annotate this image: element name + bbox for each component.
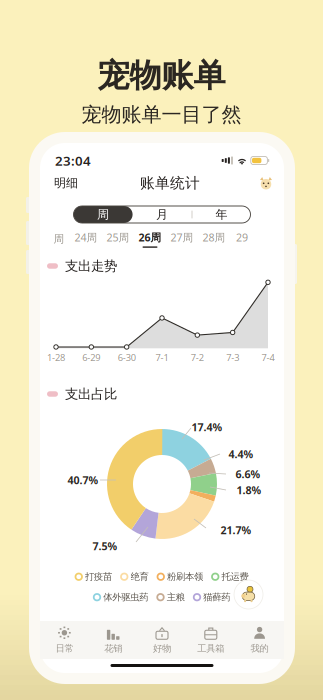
staticText: 4.4% [228, 447, 253, 461]
staticText: 26周 [138, 230, 161, 244]
staticText: 粉刷本领 [167, 571, 203, 582]
staticText: 猫藓药 [203, 591, 230, 603]
button[interactable]: 29 [230, 229, 254, 249]
staticText: 宠物账单 [97, 56, 225, 95]
staticText: 6.6% [235, 467, 260, 481]
staticText: 体外驱虫药 [103, 591, 148, 603]
staticText: 明细 [54, 176, 78, 190]
button[interactable]: 25周 [102, 229, 134, 249]
staticText: 7-3 [226, 351, 239, 364]
button[interactable]: 周 [74, 206, 133, 223]
staticText: 托运费 [221, 571, 248, 582]
button[interactable]: 24周 [70, 229, 102, 249]
staticText: 周 [53, 232, 64, 245]
staticText: 7-2 [191, 351, 204, 364]
staticText: 主粮 [167, 591, 185, 603]
staticText: 绝育 [130, 571, 148, 582]
staticText: 花销 [104, 643, 122, 654]
staticText: 6-29 [82, 351, 100, 364]
button[interactable]: 27周 [166, 229, 198, 249]
staticText: 7-1 [155, 351, 168, 364]
staticText: 23:04 [55, 152, 91, 169]
staticText: 年 [215, 207, 227, 222]
staticText: 29 [236, 230, 248, 244]
button[interactable]: 我的 [235, 621, 284, 659]
button[interactable]: 日常 [40, 621, 89, 659]
button[interactable]: 月 [133, 206, 192, 223]
staticText: 25周 [106, 230, 129, 244]
button[interactable]: 花销 [89, 621, 138, 659]
staticText: 周 [97, 207, 109, 222]
staticText: 账单统计 [140, 174, 200, 192]
staticText: 宠物账单一目了然 [81, 102, 241, 127]
staticText: 17.4% [191, 420, 222, 434]
staticText: 7-4 [261, 351, 274, 364]
staticText: 1.8% [236, 483, 261, 497]
button[interactable]: Pet profile [259, 176, 273, 190]
staticText: 工具箱 [197, 643, 224, 654]
staticText: 我的 [251, 643, 269, 654]
staticText: 月 [156, 207, 168, 222]
button[interactable]: 26周 [134, 229, 166, 249]
button[interactable]: 28周 [198, 229, 230, 249]
staticText: 28周 [202, 230, 225, 244]
staticText: 1-28 [47, 351, 65, 364]
staticText: 7.5% [92, 539, 117, 553]
staticText: 40.7% [67, 473, 98, 487]
button[interactable]: Add expense [234, 580, 263, 609]
staticText: 好物 [153, 643, 171, 654]
staticText: 6-30 [118, 351, 136, 364]
staticText: 日常 [55, 643, 73, 654]
button[interactable]: 年 [192, 206, 250, 223]
staticText: 打疫苗 [85, 571, 112, 582]
button[interactable]: 工具箱 [186, 621, 235, 659]
staticText: 21.7% [220, 523, 251, 537]
staticText: 支出走势 [65, 258, 117, 274]
staticText: 27周 [170, 230, 193, 244]
staticText: 24周 [74, 230, 97, 244]
button[interactable]: 好物 [138, 621, 186, 659]
staticText: 支出占比 [65, 386, 117, 402]
button[interactable]: 明细 [51, 174, 81, 192]
